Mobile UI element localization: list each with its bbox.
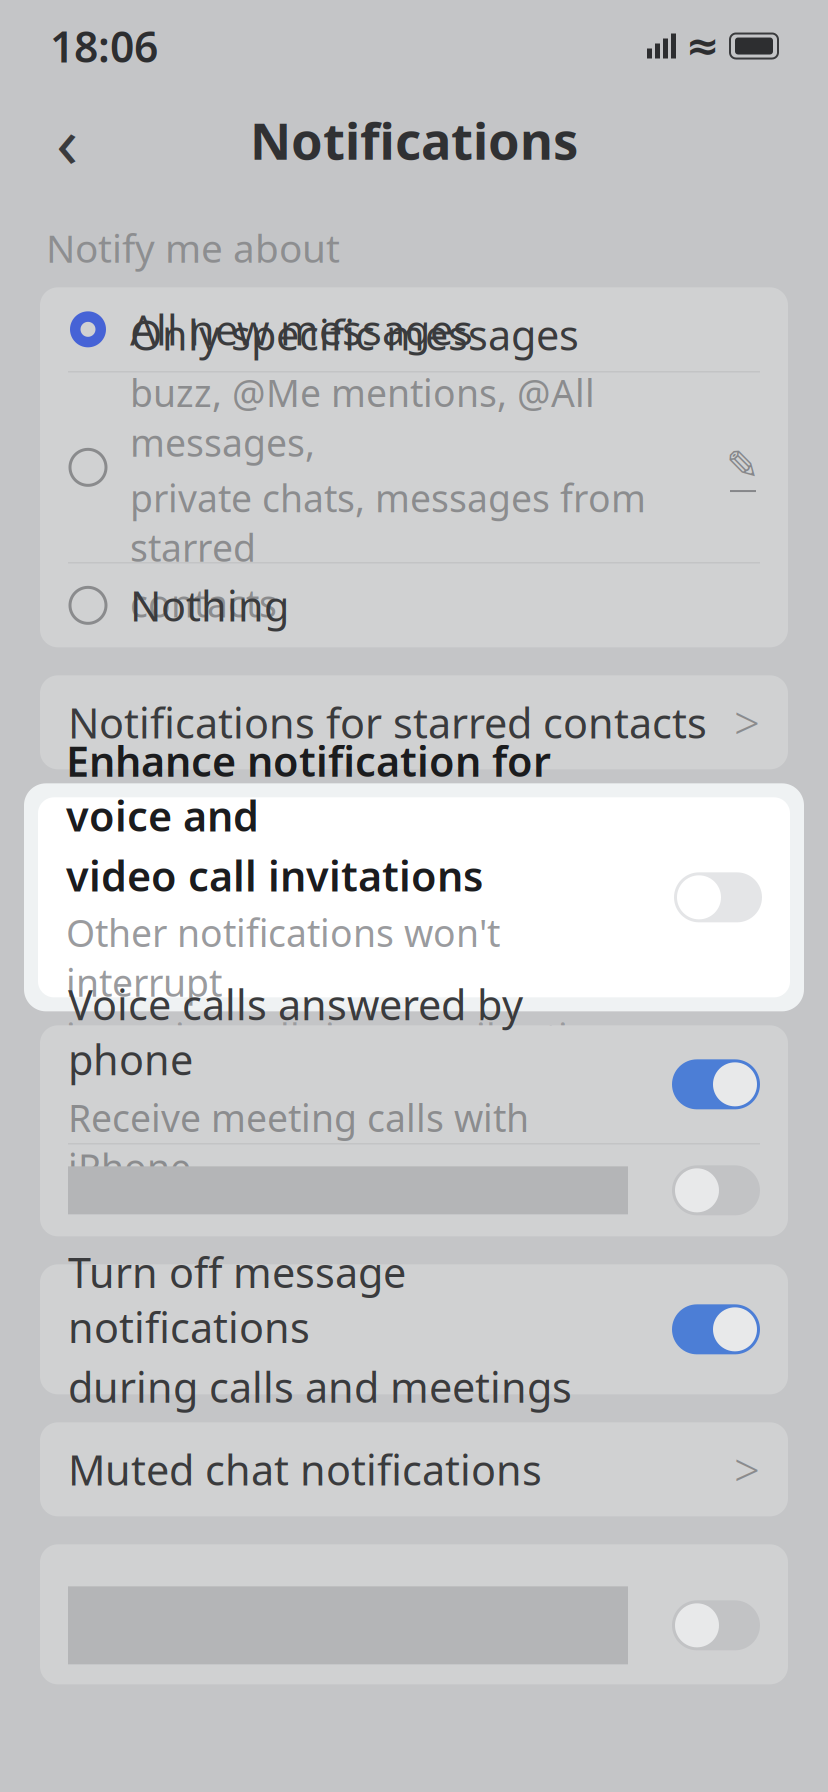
- staticText: ✎: [726, 443, 760, 488]
- button[interactable]: Muted chat notifications: [40, 1422, 788, 1516]
- staticText: Nothing: [130, 578, 289, 633]
- staticText: Enhance notification for voice and: [66, 733, 551, 843]
- staticText: incoming call rings or vibration: [66, 1012, 614, 1062]
- staticText: video call invitations: [66, 848, 483, 903]
- button[interactable]: Enhance notification for voice and: [38, 797, 790, 997]
- button[interactable]: Turn off message notifications: [40, 1264, 788, 1394]
- staticText: contacts: [130, 578, 277, 628]
- staticText: All new messages: [130, 302, 473, 357]
- staticText: Notifications: [250, 106, 578, 174]
- staticText: Muted chat notifications: [68, 1442, 542, 1497]
- staticText: Other notifications won't interrupt: [66, 908, 500, 1007]
- staticText: Notifications for starred contacts: [68, 695, 707, 750]
- button[interactable]: Setting: [40, 1144, 788, 1236]
- staticText: 18:06: [50, 18, 158, 74]
- button[interactable]: Nothing: [40, 563, 788, 647]
- button[interactable]: Setting: [40, 1544, 788, 1684]
- staticText: ≈: [686, 23, 720, 69]
- button[interactable]: Voice calls answered by phone: [40, 1025, 788, 1143]
- button[interactable]: Notifications for starred contacts: [40, 675, 788, 769]
- staticText: Receive meeting calls with iPhone: [68, 1093, 529, 1192]
- staticText: >: [734, 692, 760, 752]
- staticText: ‹: [56, 92, 78, 188]
- staticText: Turn off message notifications: [68, 1244, 406, 1354]
- staticText: Notify me about: [46, 222, 340, 273]
- staticText: Voice calls answered by phone: [68, 977, 523, 1087]
- button[interactable]: All new messages: [40, 287, 788, 371]
- staticText: Only specific messages: [130, 307, 579, 362]
- staticText: buzz, @Me mentions, @All messages,: [130, 368, 595, 467]
- staticText: private chats, messages from starred: [130, 473, 646, 572]
- button[interactable]: Back: [32, 105, 102, 175]
- staticText: >: [734, 1439, 760, 1499]
- staticText: during calls and meetings: [68, 1359, 572, 1414]
- button[interactable]: Only specific messages: [40, 372, 788, 562]
